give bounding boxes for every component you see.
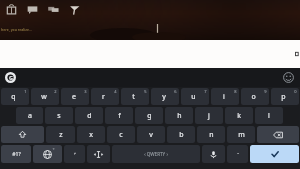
staticText: 6	[174, 89, 177, 94]
button[interactable]: l	[255, 107, 283, 124]
button[interactable]: v	[137, 126, 165, 143]
button[interactable]: y	[151, 88, 179, 105]
staticText: w	[41, 92, 47, 102]
button[interactable]: Quests	[67, 2, 81, 16]
button[interactable]: e	[61, 88, 89, 105]
button[interactable]: u	[181, 88, 209, 105]
staticText: k	[237, 111, 241, 121]
staticText: q	[11, 92, 16, 102]
button[interactable]: ,	[64, 145, 85, 163]
staticText: 3	[84, 89, 87, 94]
button[interactable]: n	[197, 126, 225, 143]
button[interactable]: r	[91, 88, 119, 105]
staticText: f	[118, 111, 121, 121]
button[interactable]: Shift	[1, 126, 44, 143]
button[interactable]: ‹ QWERTY ›	[112, 145, 200, 163]
staticText: o	[251, 92, 256, 102]
staticText: 0	[294, 89, 297, 94]
button[interactable]: p	[271, 88, 299, 105]
button[interactable]: d	[75, 107, 103, 124]
staticText: p	[281, 92, 286, 102]
button[interactable]: f	[105, 107, 133, 124]
staticText: 7	[204, 89, 207, 94]
staticText: ‹ QWERTY ›	[144, 151, 168, 157]
staticText: b	[179, 130, 184, 140]
button[interactable]: h	[165, 107, 193, 124]
button[interactable]: i	[211, 88, 239, 105]
button[interactable]: Emoji	[283, 72, 294, 83]
staticText: j	[208, 111, 210, 121]
staticText: G	[9, 74, 13, 81]
button[interactable]: k	[225, 107, 253, 124]
button[interactable]: t	[121, 88, 149, 105]
staticText: .	[237, 148, 239, 156]
button[interactable]: #1?	[1, 145, 31, 163]
button[interactable]: Switch language	[33, 145, 62, 163]
staticText: t	[132, 92, 135, 102]
staticText: 5	[144, 89, 147, 94]
staticText: 1	[24, 89, 27, 94]
staticText: ,	[74, 148, 76, 156]
staticText: u	[191, 92, 196, 102]
button[interactable]: m	[227, 126, 255, 143]
button[interactable]: s	[45, 107, 73, 124]
button[interactable]: .	[227, 145, 248, 163]
button[interactable]: a	[16, 107, 43, 124]
staticText: 8	[234, 89, 237, 94]
staticText: *	[52, 147, 55, 152]
button[interactable]	[0, 40, 300, 68]
button[interactable]: c	[107, 126, 135, 143]
button[interactable]: Google assistant	[5, 72, 16, 83]
staticText: e	[72, 92, 76, 102]
staticText: x	[89, 130, 93, 140]
button[interactable]: q	[1, 88, 29, 105]
button[interactable]: Voice input	[202, 145, 225, 163]
staticText: z	[59, 130, 63, 140]
staticText: y	[162, 92, 166, 102]
staticText: here, you realize...	[1, 27, 32, 32]
button[interactable]: Move cursor	[87, 145, 110, 163]
staticText: #1?	[12, 151, 21, 158]
button[interactable]: g	[135, 107, 163, 124]
button[interactable]: Messages	[46, 2, 60, 16]
staticText: l	[268, 111, 270, 121]
button[interactable]: b	[167, 126, 195, 143]
button[interactable]: z	[46, 126, 75, 143]
staticText: s	[57, 111, 61, 121]
button[interactable]: x	[77, 126, 105, 143]
staticText: a	[28, 111, 32, 121]
button[interactable]: Done	[250, 145, 299, 163]
staticText: r	[102, 92, 105, 102]
button[interactable]: j	[195, 107, 223, 124]
staticText: v	[149, 130, 153, 140]
button[interactable]: Backspace	[257, 126, 299, 143]
button[interactable]: Chat	[25, 2, 39, 16]
staticText: 9	[264, 89, 267, 94]
staticText: m	[238, 130, 245, 140]
staticText: i	[223, 92, 225, 102]
staticText: c	[119, 130, 123, 140]
staticText: 2	[54, 89, 57, 94]
staticText: n	[209, 130, 214, 140]
staticText: g	[147, 111, 152, 121]
staticText: 4	[114, 89, 117, 94]
button[interactable]: Inventory	[4, 2, 18, 16]
button[interactable]: w	[31, 88, 59, 105]
staticText: d	[87, 111, 92, 121]
staticText: h	[177, 111, 182, 121]
button[interactable]: o	[241, 88, 269, 105]
